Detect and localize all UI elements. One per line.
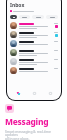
staticText: Messaging bbox=[5, 116, 49, 127]
button[interactable] bbox=[7, 30, 61, 39]
button[interactable] bbox=[7, 21, 61, 30]
button[interactable] bbox=[7, 48, 61, 57]
staticText: Smart messaging & real-time updates all … bbox=[5, 129, 63, 140]
button[interactable]: Settings bbox=[42, 89, 58, 98]
button[interactable]: Unread bbox=[32, 15, 44, 19]
button[interactable]: Channels bbox=[46, 15, 58, 19]
button[interactable] bbox=[7, 39, 61, 48]
button[interactable]: Teams bbox=[26, 89, 42, 98]
button[interactable]: Priority bbox=[19, 15, 30, 19]
button[interactable]: Chats bbox=[10, 89, 26, 98]
button[interactable] bbox=[7, 66, 61, 75]
staticText: Inbox bbox=[10, 2, 25, 9]
button[interactable] bbox=[7, 57, 61, 66]
button[interactable]: All bbox=[10, 15, 17, 19]
button[interactable]: Messaging app icon bbox=[5, 104, 14, 113]
